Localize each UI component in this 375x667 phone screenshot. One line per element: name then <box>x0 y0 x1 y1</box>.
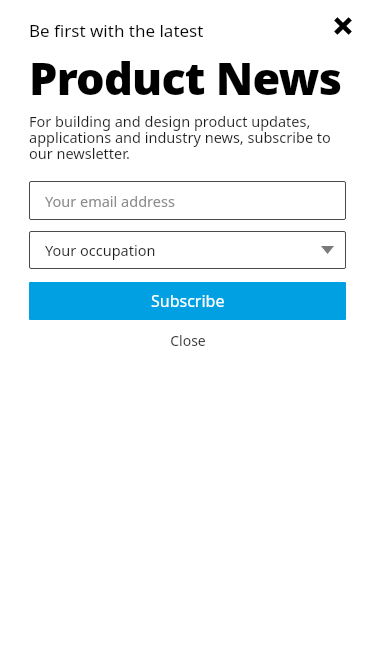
button[interactable]: Your email address <box>29 181 346 220</box>
staticText: Your occupation <box>45 240 156 260</box>
staticText: Be first with the latest <box>29 19 204 42</box>
staticText: Subscribe <box>151 290 225 312</box>
staticText: Close <box>170 331 206 350</box>
button[interactable]: Close <box>152 324 224 357</box>
staticText: Product News <box>29 47 342 108</box>
staticText: For building and design product updates,… <box>29 111 348 163</box>
button[interactable]: Close <box>329 12 357 40</box>
staticText: Your email address <box>45 191 175 211</box>
button[interactable]: Subscribe <box>29 282 346 320</box>
button[interactable]: Your occupation <box>29 231 346 269</box>
